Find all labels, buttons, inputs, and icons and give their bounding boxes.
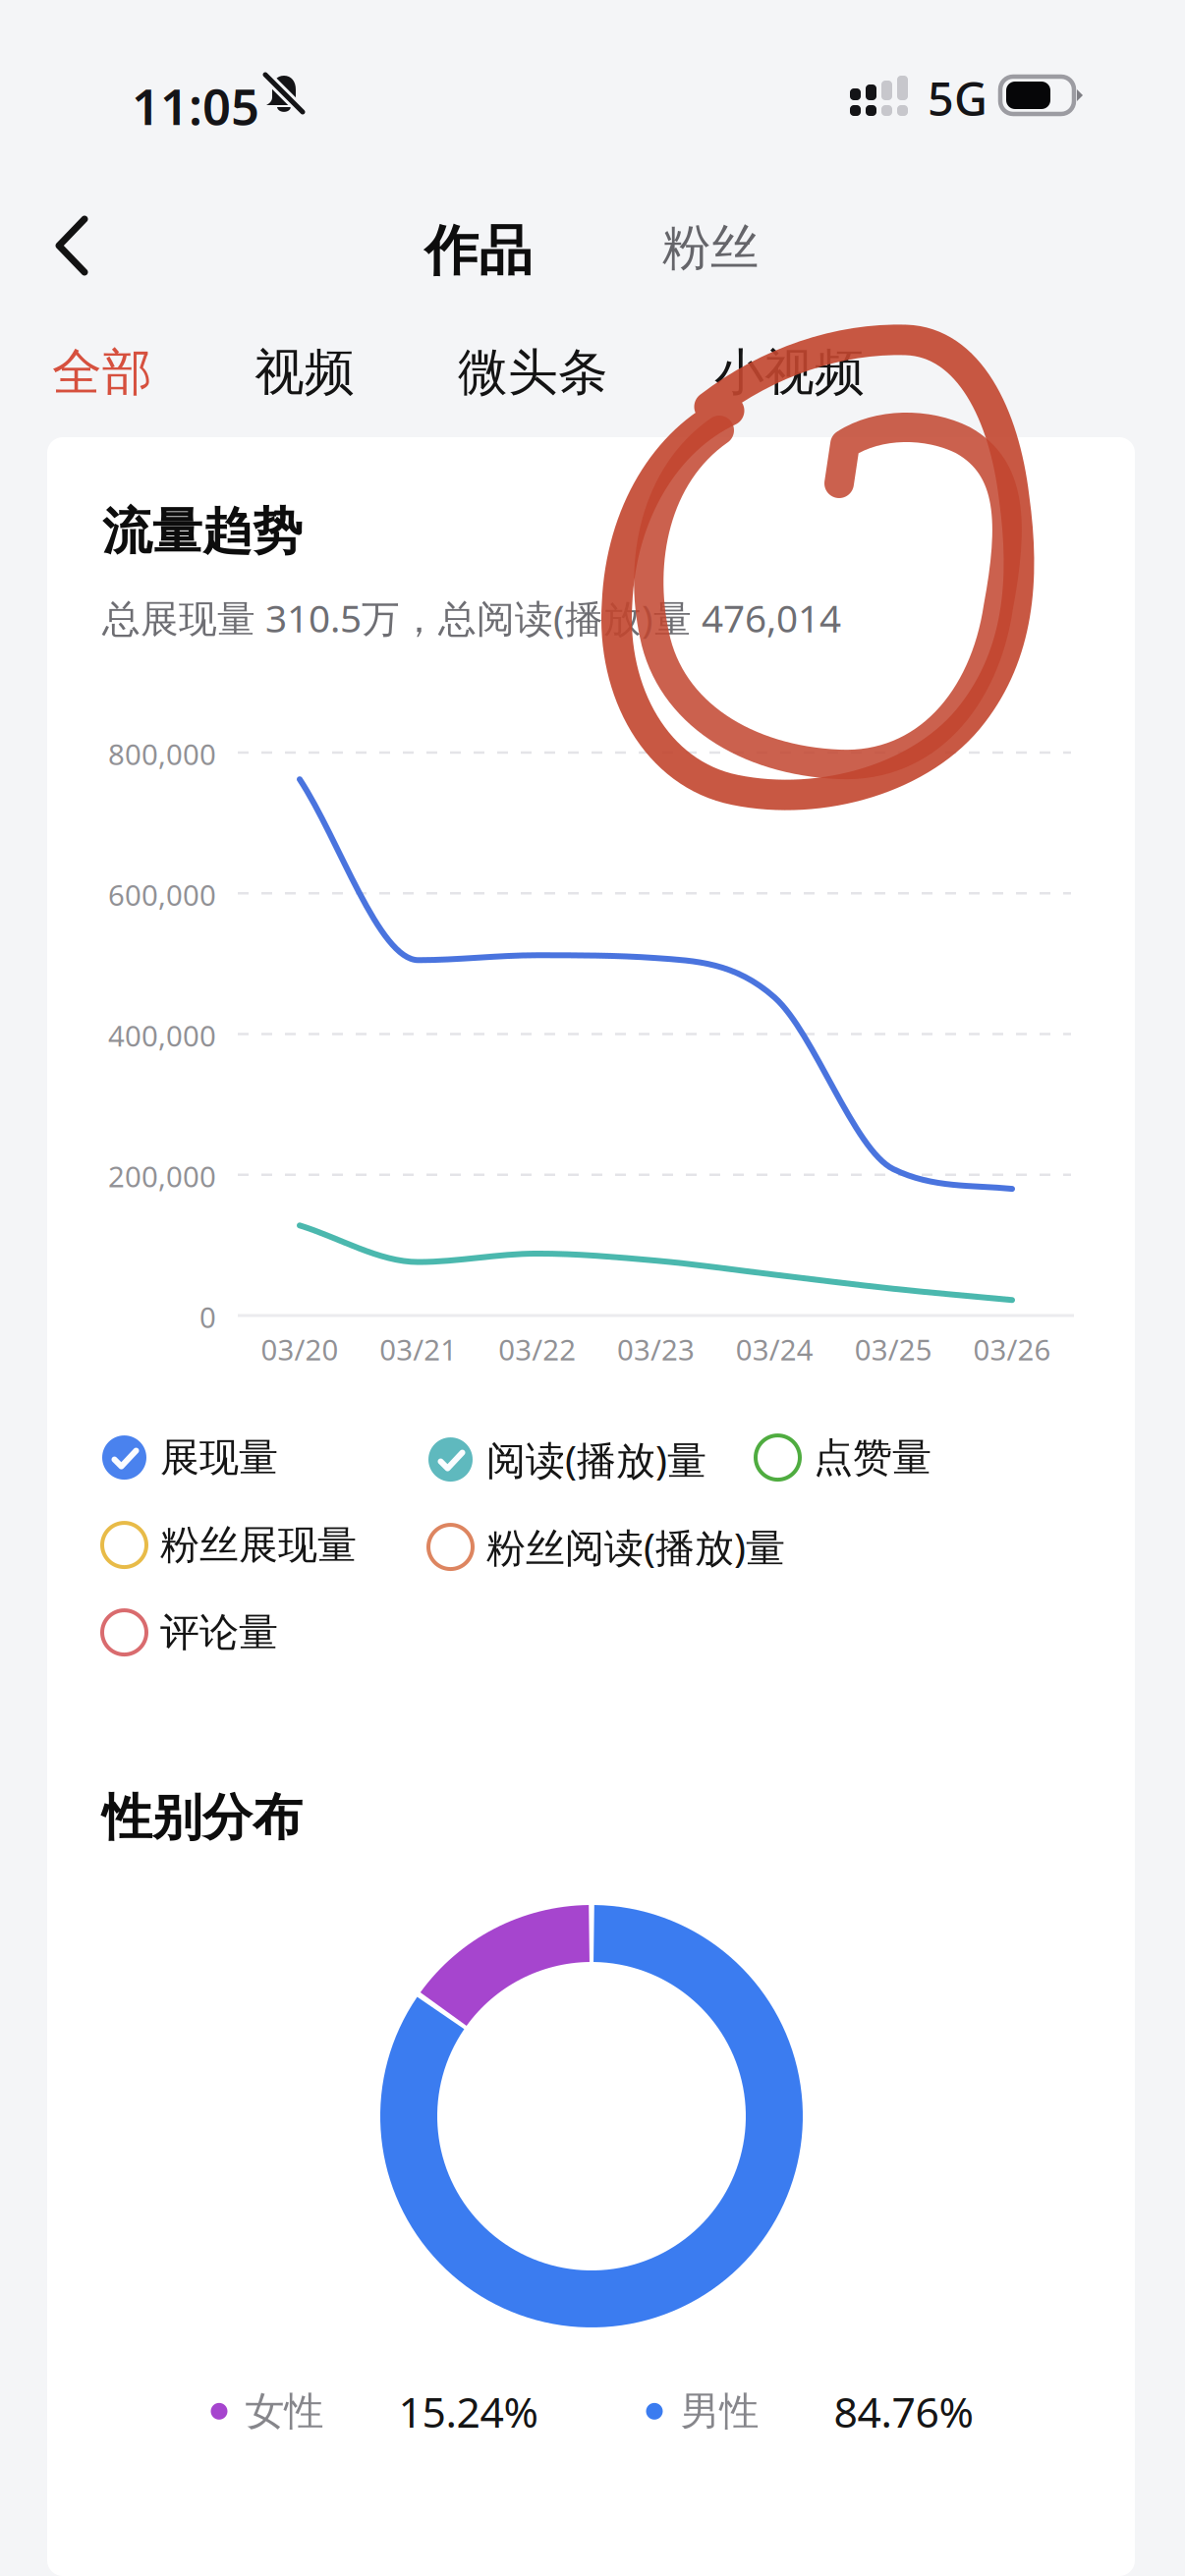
staticText: 15.24% <box>398 2383 538 2439</box>
button[interactable]: 评论量 <box>102 1608 278 1657</box>
button[interactable]: 全部 <box>52 332 152 413</box>
button[interactable]: 点赞量 <box>756 1433 931 1482</box>
button[interactable]: 视频 <box>254 332 355 413</box>
button[interactable]: 粉丝阅读(播放)量 <box>428 1521 785 1573</box>
staticText: 小视频 <box>714 342 865 403</box>
button[interactable]: 阅读(播放)量 <box>428 1433 706 1486</box>
staticText: 5G <box>928 68 987 129</box>
staticText: 全部 <box>52 342 152 403</box>
staticText: 03/24 <box>736 1330 813 1369</box>
button[interactable]: 粉丝 <box>662 208 759 287</box>
staticText: 03/26 <box>973 1330 1051 1369</box>
staticText: 03/21 <box>380 1330 457 1369</box>
button[interactable]: Back <box>22 189 122 303</box>
staticText: 600,000 <box>108 876 216 914</box>
staticText: 粉丝 <box>662 218 759 278</box>
staticText: 微头条 <box>458 342 608 403</box>
button[interactable]: 展现量 <box>102 1433 278 1482</box>
staticText: 400,000 <box>108 1016 216 1055</box>
staticText: 阅读(播放)量 <box>486 1433 706 1486</box>
staticText: 03/20 <box>261 1330 339 1369</box>
staticText: 800,000 <box>108 735 216 773</box>
staticText: 视频 <box>254 342 355 403</box>
staticText: 评论量 <box>160 1608 278 1657</box>
staticText: 84.76% <box>834 2383 973 2439</box>
staticText: 流量趋势 <box>102 501 303 562</box>
staticText: 11:05 <box>132 73 259 139</box>
staticText: 03/23 <box>617 1330 695 1369</box>
staticText: 作品 <box>424 218 533 284</box>
staticText: 200,000 <box>108 1157 216 1195</box>
staticText: 女性 <box>245 2387 324 2435</box>
staticText: 粉丝展现量 <box>160 1521 357 1569</box>
staticText: 展现量 <box>160 1433 278 1482</box>
staticText: 点赞量 <box>814 1433 931 1482</box>
staticText: 性别分布 <box>102 1787 303 1848</box>
staticText: 03/22 <box>498 1330 576 1369</box>
button[interactable]: 小视频 <box>714 332 865 413</box>
staticText: 粉丝阅读(播放)量 <box>486 1521 785 1573</box>
staticText: 0 <box>199 1298 216 1336</box>
button[interactable]: 作品 <box>424 208 533 294</box>
button[interactable]: 粉丝展现量 <box>102 1521 357 1569</box>
staticText: 总展现量 310.5万，总阅读(播放)量 476,014 <box>102 592 841 643</box>
button[interactable]: 微头条 <box>458 332 608 413</box>
staticText: 男性 <box>680 2387 759 2435</box>
staticText: 03/25 <box>855 1330 932 1369</box>
